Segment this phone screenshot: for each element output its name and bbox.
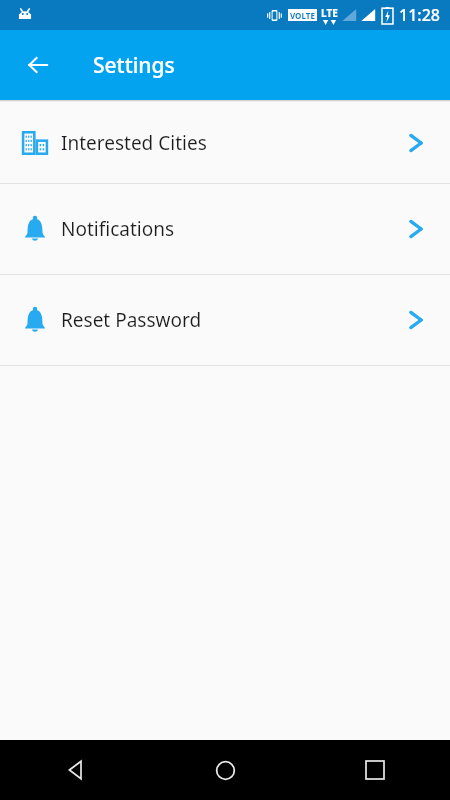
- button[interactable]: Interested Cities: [0, 102, 450, 183]
- staticText: LTE: [321, 6, 338, 20]
- button[interactable]: Recent apps: [300, 740, 450, 800]
- button[interactable]: Back: [14, 41, 62, 89]
- button[interactable]: Reset Password: [0, 275, 450, 365]
- staticText: Reset Password: [61, 307, 202, 333]
- button[interactable]: Notifications: [0, 184, 450, 274]
- staticText: Notifications: [61, 216, 175, 242]
- button[interactable]: Home: [150, 740, 300, 800]
- staticText: Settings: [93, 51, 175, 80]
- button[interactable]: Back: [0, 740, 150, 800]
- staticText: VOLTE: [290, 10, 315, 21]
- staticText: 11:28: [399, 4, 440, 26]
- staticText: Interested Cities: [61, 130, 207, 156]
